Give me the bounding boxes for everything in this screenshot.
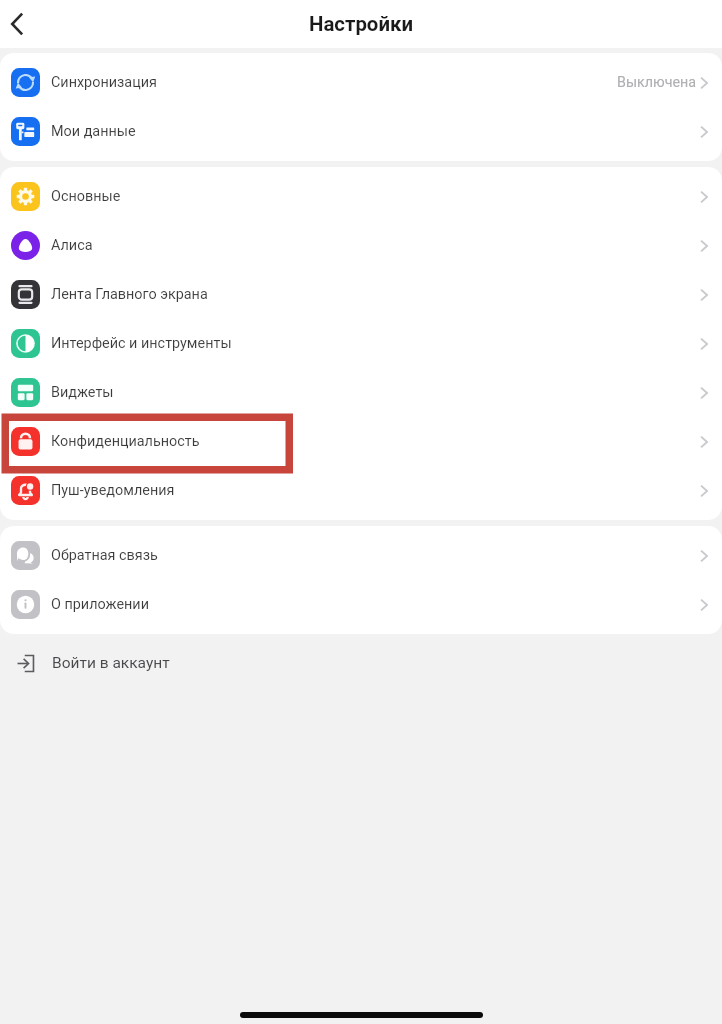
staticText: Конфиденциальность: [51, 433, 200, 450]
staticText: Мои данные: [51, 123, 136, 140]
staticText: Обратная связь: [51, 547, 158, 564]
button[interactable]: Алиса: [0, 221, 722, 270]
staticText: Войти в аккаунт: [52, 654, 170, 672]
staticText: Синхронизация: [51, 74, 157, 91]
staticText: Выключена: [617, 74, 697, 91]
button[interactable]: Синхронизация: [0, 58, 722, 107]
button[interactable]: Обратная связь: [0, 531, 722, 580]
button[interactable]: Назад: [0, 7, 34, 41]
button[interactable]: Виджеты: [0, 368, 722, 417]
staticText: О приложении: [51, 596, 149, 613]
button[interactable]: О приложении: [0, 580, 722, 629]
button[interactable]: Основные: [0, 172, 722, 221]
button[interactable]: Лента Главного экрана: [0, 270, 722, 319]
staticText: Настройки: [309, 12, 414, 36]
staticText: Пуш-уведомления: [51, 482, 175, 499]
button[interactable]: Войти в аккаунт: [0, 634, 722, 692]
button[interactable]: Мои данные: [0, 107, 722, 156]
button[interactable]: Пуш-уведомления: [0, 466, 722, 515]
staticText: Интерфейс и инструменты: [51, 335, 232, 352]
staticText: Основные: [51, 188, 121, 205]
staticText: Алиса: [51, 237, 93, 254]
button[interactable]: Конфиденциальность: [0, 417, 722, 466]
staticText: Виджеты: [51, 384, 114, 401]
staticText: Лента Главного экрана: [51, 286, 208, 303]
button[interactable]: Интерфейс и инструменты: [0, 319, 722, 368]
